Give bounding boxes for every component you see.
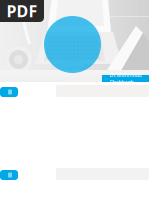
button[interactable]: Open document [0, 168, 18, 178]
staticText: Dr. Mahmoud Chahbagh [109, 71, 141, 86]
button[interactable]: Open document [0, 85, 18, 95]
staticText: PDF [6, 0, 37, 22]
button[interactable]: Dr. Mahmoud Chahbagh [102, 75, 149, 82]
